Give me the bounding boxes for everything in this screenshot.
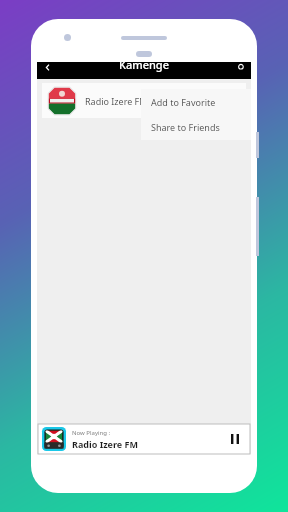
button[interactable]: Back: [37, 62, 59, 79]
button[interactable]: Add to Favorite: [141, 89, 251, 114]
button[interactable]: Pause: [224, 428, 246, 450]
staticText: Share to Friends: [151, 121, 220, 133]
staticText: Radio Izere FM: [85, 95, 148, 107]
button[interactable]: Share to Friends: [141, 114, 251, 140]
staticText: Add to Favorite: [151, 96, 216, 108]
button[interactable]: Radio Izere FM: [42, 83, 246, 118]
button[interactable]: Now Playing :: [38, 424, 250, 454]
staticText: Now Playing :: [72, 429, 111, 437]
staticText: Kamenge: [119, 57, 170, 72]
staticText: Radio Izere FM: [72, 438, 138, 450]
button[interactable]: Search: [231, 62, 251, 79]
